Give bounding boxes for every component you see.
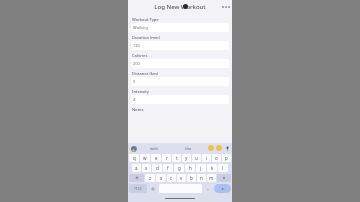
staticText: d — [156, 165, 159, 171]
staticText: Notes — [132, 107, 144, 112]
staticText: Intensity — [132, 89, 149, 94]
button[interactable]: t — [172, 154, 181, 162]
staticText: Walking — [133, 25, 149, 30]
staticText: with — [150, 146, 159, 151]
staticText: ?123 — [134, 186, 142, 191]
button[interactable]: q — [129, 154, 139, 162]
staticText: w — [143, 155, 147, 161]
staticText: e — [155, 155, 158, 161]
staticText: h — [189, 165, 192, 171]
button[interactable]: 5 — [131, 77, 229, 86]
button[interactable]: Emoji — [208, 145, 214, 151]
button[interactable]: d — [152, 164, 162, 172]
staticText: Workout Type — [132, 17, 159, 22]
button[interactable]: n — [197, 174, 206, 182]
staticText: y — [185, 155, 188, 161]
button[interactable]: m — [207, 174, 216, 182]
button[interactable]: the — [171, 143, 206, 153]
staticText: the — [185, 146, 192, 151]
button[interactable]: y — [182, 154, 191, 162]
button[interactable]: 200 — [131, 59, 229, 68]
staticText: Log New Workout — [154, 3, 206, 11]
button[interactable]: Walking — [131, 23, 229, 32]
staticText: Calories — [132, 53, 148, 58]
staticText: v — [180, 175, 183, 181]
button[interactable]: s — [142, 164, 151, 172]
button[interactable]: 4 — [131, 95, 229, 104]
button[interactable]: e — [151, 154, 161, 162]
staticText: o — [215, 155, 218, 161]
staticText: m — [209, 175, 214, 181]
button[interactable]: Period — [203, 184, 213, 193]
button[interactable]: ?123 — [129, 184, 147, 193]
staticText: j — [200, 165, 202, 171]
button[interactable]: Emoji — [216, 145, 222, 151]
button[interactable]: u — [192, 154, 201, 162]
staticText: Distance (km) — [132, 71, 159, 76]
staticText: f — [167, 165, 169, 171]
button[interactable]: h — [185, 164, 195, 172]
staticText: z — [149, 175, 152, 181]
staticText: Duration (min) — [132, 35, 160, 40]
staticText: t — [176, 155, 178, 161]
staticText: q — [133, 155, 136, 161]
button[interactable]: o — [212, 154, 221, 162]
button[interactable]: c — [167, 174, 176, 182]
staticText: k — [211, 165, 214, 171]
staticText: 200 — [133, 61, 140, 66]
staticText: l — [222, 165, 224, 171]
button[interactable]: k — [207, 164, 217, 172]
button[interactable]: a — [132, 164, 141, 172]
staticText: u — [195, 155, 198, 161]
staticText: r — [166, 155, 168, 161]
button[interactable]: Backspace — [217, 174, 231, 182]
button[interactable]: Emoji keyboard — [148, 184, 158, 193]
button[interactable]: z — [145, 174, 155, 182]
staticText: b — [190, 175, 193, 181]
button[interactable]: x — [156, 174, 166, 182]
button[interactable]: j — [196, 164, 206, 172]
button[interactable]: l — [218, 164, 228, 172]
button[interactable]: g — [174, 164, 184, 172]
staticText: 120 — [133, 43, 140, 48]
staticText: 5 — [133, 79, 136, 84]
button[interactable]: Google search — [130, 145, 137, 152]
staticText: x — [160, 175, 163, 181]
button[interactable]: Voice input — [224, 145, 230, 151]
staticText: c — [170, 175, 173, 181]
staticText: a — [135, 165, 138, 171]
staticText: i — [206, 155, 208, 161]
staticText: s — [145, 165, 148, 171]
button[interactable]: Shift — [129, 174, 144, 182]
button[interactable]: w — [140, 154, 150, 162]
button[interactable]: v — [177, 174, 186, 182]
staticText: g — [178, 165, 181, 171]
button[interactable]: f — [163, 164, 173, 172]
staticText: 4 — [133, 97, 136, 102]
staticText: n — [200, 175, 203, 181]
button[interactable]: i — [202, 154, 211, 162]
button[interactable]: with — [137, 143, 171, 153]
staticText: p — [225, 155, 228, 161]
button[interactable]: 120 — [131, 41, 229, 50]
button[interactable]: Enter — [214, 184, 231, 193]
button[interactable]: r — [162, 154, 171, 162]
button[interactable]: p — [222, 154, 231, 162]
button[interactable]: b — [187, 174, 196, 182]
